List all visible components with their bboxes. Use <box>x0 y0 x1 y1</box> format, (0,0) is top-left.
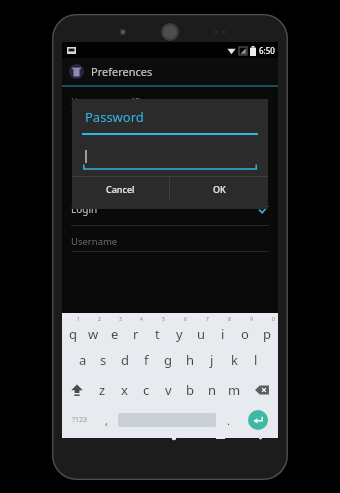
staticText: q <box>69 325 77 343</box>
staticText: 8 <box>228 316 231 323</box>
staticText: c <box>143 381 150 399</box>
button[interactable]: 5 <box>146 316 168 345</box>
button[interactable]: z <box>92 375 113 405</box>
button[interactable]: j <box>201 345 223 375</box>
button[interactable]: x <box>113 375 135 405</box>
button[interactable]: 7 <box>190 316 212 345</box>
staticText: 7 <box>206 316 209 323</box>
button[interactable]: a <box>72 345 93 375</box>
staticText: 6 <box>184 316 187 323</box>
staticText: f <box>144 351 149 369</box>
button[interactable]: m <box>223 375 245 405</box>
staticText: 1 <box>77 316 80 323</box>
staticText: p <box>263 325 271 343</box>
staticText: g <box>164 351 172 369</box>
button[interactable]: 9 <box>234 316 256 345</box>
button[interactable]: 6 <box>168 316 190 345</box>
button[interactable]: s <box>93 345 114 375</box>
staticText: s <box>100 351 107 369</box>
staticText: v <box>165 381 172 399</box>
button[interactable]: 3 <box>104 316 125 345</box>
staticText: x <box>121 381 128 399</box>
staticText: w <box>88 325 99 343</box>
button[interactable]: d <box>114 345 135 375</box>
button[interactable]: l <box>245 345 267 375</box>
staticText: r <box>133 325 139 343</box>
button[interactable]: Backspace <box>245 375 278 405</box>
button[interactable]: v <box>157 375 179 405</box>
staticText: z <box>99 381 106 399</box>
staticText: 9 <box>250 316 253 323</box>
button[interactable]: 0 <box>256 316 278 345</box>
staticText: Preferences <box>91 64 153 79</box>
staticText: a <box>79 351 87 369</box>
staticText: l <box>254 351 258 369</box>
staticText: Username <box>71 235 118 248</box>
staticText: d <box>121 351 129 369</box>
staticText: 2 <box>98 316 101 323</box>
staticText: u <box>197 325 206 343</box>
staticText: j <box>210 351 214 369</box>
button[interactable]: h <box>179 345 201 375</box>
button[interactable]: c <box>135 375 157 405</box>
staticText: 0 <box>272 316 275 323</box>
staticText: Cancel <box>106 183 135 195</box>
staticText: Login <box>71 202 98 216</box>
staticText: o <box>241 325 249 343</box>
staticText: k <box>231 351 238 369</box>
staticText: , <box>105 413 108 428</box>
staticText: 3 <box>119 316 122 323</box>
button[interactable]: b <box>179 375 201 405</box>
button[interactable]: . <box>219 405 237 435</box>
button[interactable]: Login <box>71 198 269 220</box>
staticText: t <box>155 325 160 343</box>
staticText: Password <box>85 108 144 126</box>
staticText: e <box>111 325 119 343</box>
button[interactable]: 1 <box>62 316 83 345</box>
staticText: OK <box>213 183 226 195</box>
button[interactable]: n <box>201 375 223 405</box>
button[interactable]: , <box>97 405 115 435</box>
staticText: b <box>186 381 194 399</box>
staticText: Hostname or IP <box>71 95 141 108</box>
button[interactable]: 8 <box>212 316 234 345</box>
staticText: 4 <box>140 316 143 323</box>
button[interactable]: 4 <box>125 316 146 345</box>
staticText: h <box>186 351 195 369</box>
button[interactable]: g <box>157 345 179 375</box>
staticText: i <box>221 325 225 343</box>
button[interactable]: f <box>135 345 157 375</box>
button[interactable]: Enter <box>248 410 268 430</box>
staticText: y <box>176 325 183 343</box>
staticText: ?123 <box>72 415 88 425</box>
staticText: 5 <box>162 316 165 323</box>
button[interactable]: OK <box>170 177 268 201</box>
button[interactable]: k <box>223 345 245 375</box>
button[interactable]: Cancel <box>72 177 169 201</box>
staticText: n <box>208 381 217 399</box>
button[interactable]: 2 <box>83 316 104 345</box>
staticText: 6:50 <box>259 45 275 56</box>
staticText: m <box>228 381 241 399</box>
button[interactable]: Shift <box>62 375 92 405</box>
button[interactable]: ?123 <box>62 405 97 435</box>
staticText: . <box>227 413 230 428</box>
